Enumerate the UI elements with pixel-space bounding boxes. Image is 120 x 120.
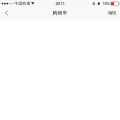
- button[interactable]: 编辑: [104, 7, 120, 18]
- staticText: 编辑: [108, 10, 116, 16]
- staticText: 购物车: [52, 10, 67, 16]
- staticText: 中国联通: [14, 1, 30, 6]
- staticText: 10%: [102, 1, 109, 6]
- staticText: 20:11: [55, 1, 64, 6]
- button[interactable]: Back: [0, 7, 13, 18]
